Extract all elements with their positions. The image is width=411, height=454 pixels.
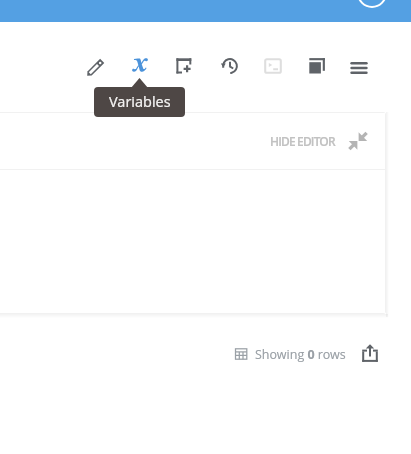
button[interactable]: More options [343, 52, 375, 84]
button[interactable]: Query history [214, 50, 246, 82]
button[interactable]: Duplicate query [301, 50, 333, 82]
button[interactable]: Collapse editor [346, 129, 370, 153]
button[interactable]: HIDE EDITOR [265, 127, 340, 155]
staticText: HIDE EDITOR [270, 133, 335, 149]
button[interactable]: New query [168, 50, 200, 82]
button[interactable]: Console [257, 50, 289, 82]
button[interactable]: Variables [124, 49, 156, 81]
button[interactable]: Showing 0 rows [233, 344, 346, 364]
button[interactable]: Edit query [80, 51, 112, 83]
button[interactable]: Export results [358, 342, 382, 366]
staticText: Showing 0 rows [255, 346, 346, 363]
staticText: Variables [109, 92, 171, 112]
